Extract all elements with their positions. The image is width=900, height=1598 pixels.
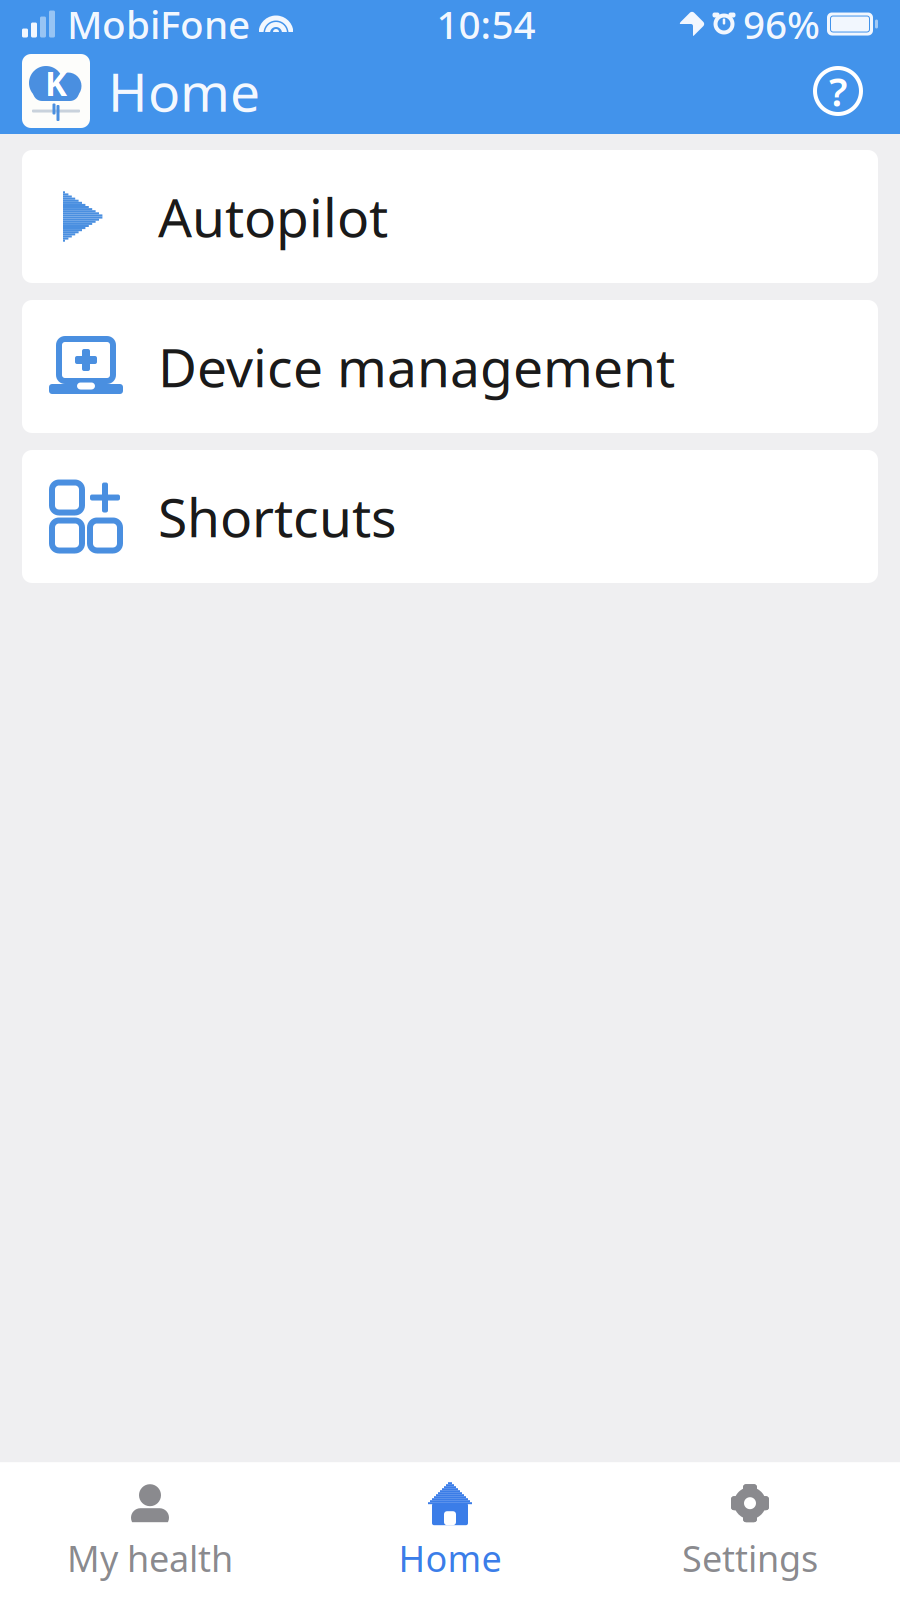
staticText: Home — [108, 56, 260, 126]
staticText: ? — [829, 64, 847, 117]
staticText: 96% — [743, 0, 820, 50]
staticText: Device management — [158, 331, 675, 402]
staticText: My health — [67, 1534, 233, 1582]
staticText: K — [45, 61, 67, 105]
staticText: MobiFone — [67, 0, 250, 50]
button[interactable]: Home — [300, 1462, 600, 1598]
button[interactable]: My health — [0, 1462, 300, 1598]
button[interactable]: K — [22, 54, 260, 128]
button[interactable]: Autopilot — [22, 150, 878, 283]
staticText: 10:54 — [436, 0, 535, 50]
staticText: Shortcuts — [158, 481, 397, 552]
button[interactable]: Device management — [22, 300, 878, 433]
staticText: Autopilot — [158, 181, 388, 252]
button[interactable]: Settings — [600, 1462, 900, 1598]
button[interactable]: Help — [802, 55, 874, 127]
staticText: Home — [398, 1534, 501, 1582]
button[interactable]: Shortcuts — [22, 450, 878, 583]
staticText: Settings — [682, 1534, 818, 1582]
